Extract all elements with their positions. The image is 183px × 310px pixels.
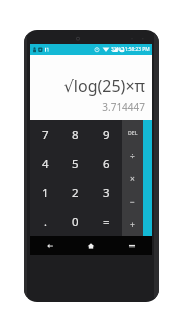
staticText: 5 <box>72 156 79 172</box>
button[interactable]: × <box>122 167 143 190</box>
button[interactable]: 1 <box>30 178 60 207</box>
staticText: × <box>130 173 135 185</box>
staticText: 2 <box>72 185 79 201</box>
staticText: 6 <box>103 156 110 172</box>
staticText: ÷ <box>130 150 135 162</box>
button[interactable]: − <box>122 190 143 213</box>
staticText: 0 <box>72 214 79 230</box>
button[interactable]: Home <box>70 236 111 255</box>
staticText: 9 <box>103 127 110 143</box>
button[interactable]: 2 <box>60 178 91 207</box>
button[interactable]: √log(25)×π <box>30 55 152 120</box>
staticText: 3.714447 <box>102 100 145 114</box>
staticText: − <box>130 196 135 208</box>
button[interactable]: = <box>91 207 122 236</box>
staticText: = <box>103 214 110 230</box>
staticText: 31% <box>111 46 121 53</box>
button[interactable]: + <box>122 213 143 236</box>
staticText: 1 <box>42 185 49 201</box>
staticText: 3 <box>103 185 110 201</box>
button[interactable]: Back <box>30 236 70 255</box>
staticText: 8 <box>72 127 79 143</box>
staticText: √log(25)×π <box>63 75 145 97</box>
staticText: . <box>44 214 47 229</box>
staticText: + <box>130 219 135 231</box>
staticText: 11:58:23 PM <box>122 46 150 53</box>
staticText: 4 <box>42 156 49 172</box>
button[interactable]: 4 <box>30 149 60 178</box>
button[interactable]: 9 <box>91 120 122 149</box>
button[interactable]: 6 <box>91 149 122 178</box>
button[interactable]: DEL <box>122 120 143 144</box>
button[interactable]: Recent apps <box>111 236 152 255</box>
button[interactable]: 3 <box>91 178 122 207</box>
staticText: 7 <box>42 127 49 143</box>
button[interactable]: 8 <box>60 120 91 149</box>
staticText: DEL <box>128 129 138 136</box>
button[interactable]: ÷ <box>122 144 143 167</box>
button[interactable]: 7 <box>30 120 60 149</box>
button[interactable]: 0 <box>60 207 91 236</box>
button[interactable]: 5 <box>60 149 91 178</box>
button[interactable]: . <box>30 207 60 236</box>
